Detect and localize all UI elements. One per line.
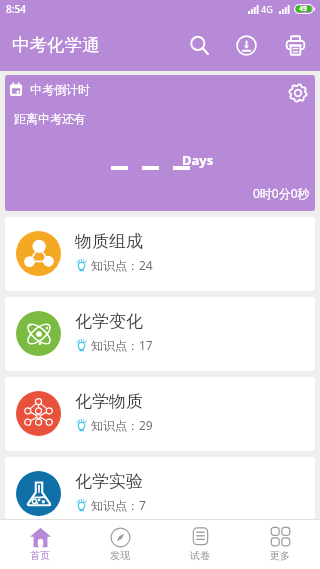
staticText: 距离中考还有 <box>14 111 86 126</box>
button[interactable]: Search <box>177 18 222 71</box>
button[interactable]: Print <box>271 18 320 71</box>
staticText: 化学变化 <box>75 311 143 332</box>
staticText: 8:54 <box>6 2 26 16</box>
button[interactable]: 化学实验 <box>5 457 315 519</box>
button[interactable]: 化学物质 <box>5 377 315 451</box>
button[interactable]: 试卷 <box>160 520 240 569</box>
staticText: 化学物质 <box>75 391 143 412</box>
staticText: 知识点：17 <box>91 337 153 353</box>
staticText: 首页 <box>30 549 50 562</box>
staticText: 4G <box>261 3 273 15</box>
staticText: 49 <box>299 4 308 14</box>
staticText: 化学实验 <box>75 471 143 492</box>
button[interactable]: 化学变化 <box>5 297 315 371</box>
staticText: 中考倒计时 <box>30 82 90 97</box>
button[interactable]: 发现 <box>80 520 160 569</box>
staticText: 试卷 <box>190 549 210 562</box>
button[interactable]: 中考倒计时 <box>5 75 315 211</box>
button[interactable]: Download <box>222 18 271 71</box>
staticText: 0时0分0秒 <box>253 185 310 201</box>
staticText: 物质组成 <box>75 231 143 252</box>
button[interactable]: 首页 <box>0 520 80 569</box>
staticText: 知识点：7 <box>91 497 146 513</box>
staticText: 中考化学通 <box>12 34 100 56</box>
button[interactable]: 物质组成 <box>5 217 315 291</box>
button[interactable]: 更多 <box>240 520 320 569</box>
staticText: 发现 <box>110 549 130 562</box>
staticText: 更多 <box>270 549 290 562</box>
staticText: 知识点：29 <box>91 417 153 433</box>
button[interactable]: Settings <box>287 82 309 104</box>
staticText: Days <box>182 151 214 169</box>
staticText: 知识点：24 <box>91 257 153 273</box>
